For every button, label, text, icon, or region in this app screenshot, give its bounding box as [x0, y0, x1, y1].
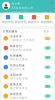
- button[interactable]: 我的证照: [14, 15, 27, 24]
- staticText: 企业开办: [10, 35, 22, 38]
- button[interactable]: 更多 ›: [43, 29, 51, 33]
- button[interactable]: 政策兑现: [1, 81, 53, 91]
- button[interactable]: 我的办件: [27, 15, 40, 24]
- button[interactable]: 住房公积金: [1, 62, 53, 72]
- staticText: 查询: [44, 65, 50, 69]
- staticText: 惠企政策直达: [10, 87, 28, 90]
- staticText: 单位职工参保: [10, 58, 28, 61]
- staticText: 张小明: [12, 2, 21, 5]
- button[interactable]: 证照办理: [1, 72, 53, 81]
- staticText: 社保缴纳: [10, 54, 22, 57]
- staticText: 进入: [44, 85, 50, 88]
- staticText: 91310000XXXXXXXX: [12, 10, 28, 12]
- staticText: 进入: [44, 75, 50, 78]
- button[interactable]: 我的申报: [1, 15, 14, 24]
- button[interactable]: 企业开办: [1, 33, 53, 43]
- staticText: 我的申报: [2, 20, 14, 24]
- staticText: 住房公积金: [10, 64, 25, 67]
- staticText: 更多 ›: [43, 29, 51, 33]
- staticText: 进入: [44, 46, 50, 50]
- button[interactable]: 社保缴纳: [1, 53, 53, 62]
- staticText: 开户与汇缴: [10, 67, 25, 71]
- staticText: 进入: [44, 94, 50, 98]
- staticText: 进入: [44, 56, 50, 59]
- staticText: 办理: [44, 37, 50, 40]
- button[interactable]: 我的预约: [40, 15, 53, 24]
- staticText: 我的服务: [6, 30, 18, 33]
- staticText: 诉求受理: [10, 92, 22, 96]
- staticText: 电子证照下载: [10, 77, 28, 80]
- staticText: 政策兑现: [10, 83, 22, 86]
- staticText: 证照办理: [10, 73, 22, 76]
- staticText: XX科技有限公司: [12, 6, 34, 10]
- staticText: 在线申报 免跑腿: [10, 48, 32, 51]
- staticText: 我的办件: [28, 20, 40, 24]
- staticText: 我的预约: [41, 20, 53, 24]
- button[interactable]: 诉求受理: [1, 91, 53, 100]
- staticText: 问题反馈督办: [10, 96, 28, 99]
- staticText: 税务登记: [10, 44, 22, 48]
- staticText: 我的证照: [15, 20, 27, 24]
- staticText: 一网通办 当天领照: [10, 39, 35, 42]
- button[interactable]: 税务登记: [1, 43, 53, 53]
